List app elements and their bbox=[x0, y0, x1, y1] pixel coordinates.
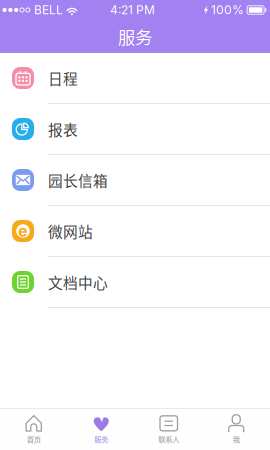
staticText: 联系人 bbox=[158, 434, 179, 444]
button[interactable]: 首页 bbox=[0, 409, 67, 450]
staticText: 报表 bbox=[48, 118, 78, 140]
staticText: 文档中心 bbox=[48, 271, 108, 293]
button[interactable]: 报表 bbox=[0, 104, 270, 155]
button[interactable]: e bbox=[0, 206, 270, 257]
button[interactable]: 我 bbox=[202, 409, 270, 450]
staticText: 100% bbox=[211, 3, 244, 17]
button[interactable]: 服务 bbox=[67, 409, 135, 450]
button[interactable]: 园长信箱 bbox=[0, 155, 270, 206]
staticText: 4:21 PM bbox=[110, 3, 155, 17]
staticText: 我 bbox=[233, 434, 240, 444]
button[interactable]: 日程 bbox=[0, 53, 270, 104]
staticText: 园长信箱 bbox=[48, 169, 108, 191]
staticText: 服务 bbox=[94, 434, 108, 444]
staticText: 服务 bbox=[118, 24, 152, 49]
button[interactable]: 文档中心 bbox=[0, 257, 270, 308]
staticText: BELL bbox=[34, 3, 63, 17]
staticText: e bbox=[18, 221, 28, 241]
button[interactable]: 联系人 bbox=[135, 409, 202, 450]
staticText: 首页 bbox=[27, 434, 41, 444]
staticText: 日程 bbox=[48, 67, 78, 89]
staticText: 微网站 bbox=[48, 220, 93, 242]
